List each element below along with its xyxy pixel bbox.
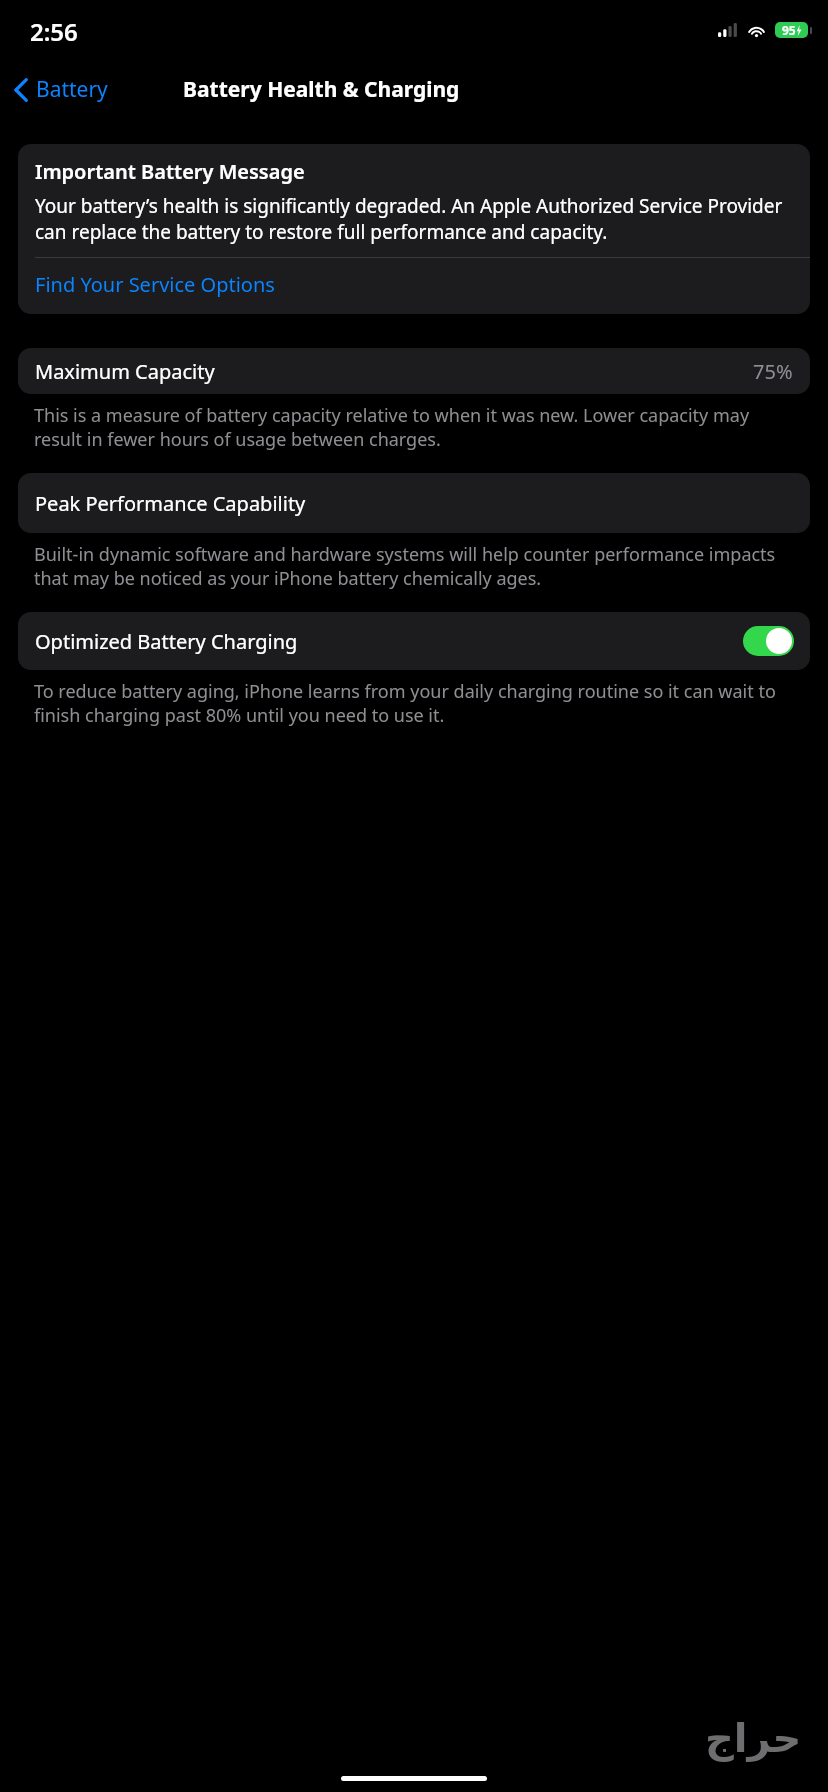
staticText: Peak Performance Capability — [35, 490, 306, 517]
staticText: Find Your Service Options — [35, 271, 275, 298]
button[interactable]: Maximum Capacity — [18, 348, 810, 394]
staticText: حراج — [705, 1715, 802, 1762]
staticText: To reduce battery aging, iPhone learns f… — [34, 679, 794, 727]
staticText: Battery Health & Charging — [183, 75, 460, 104]
staticText: 2:56 — [30, 15, 78, 48]
button[interactable]: Find Your Service Options — [18, 258, 810, 314]
button[interactable]: Optimized Battery Charging — [18, 612, 810, 670]
staticText: Battery — [36, 75, 108, 104]
button[interactable]: Peak Performance Capability — [18, 473, 810, 533]
button[interactable]: Optimized Battery Charging toggle, on — [743, 626, 794, 656]
staticText: Optimized Battery Charging — [35, 628, 743, 655]
staticText: Maximum Capacity — [35, 358, 753, 385]
button[interactable]: Battery — [0, 69, 116, 110]
staticText: Important Battery Message — [35, 158, 305, 185]
staticText: 75% — [753, 358, 793, 385]
staticText: Your battery’s health is significantly d… — [35, 193, 793, 244]
staticText: Built-in dynamic software and hardware s… — [34, 542, 794, 590]
staticText: This is a measure of battery capacity re… — [34, 403, 794, 451]
staticText: 95 — [782, 22, 796, 38]
